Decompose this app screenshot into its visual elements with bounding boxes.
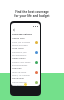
staticText: Travel plan xyxy=(12,77,24,80)
staticText: Life plan xyxy=(12,67,22,70)
button[interactable]: Health plan xyxy=(12,37,38,47)
button[interactable]: Home policy xyxy=(12,57,38,67)
button[interactable]: Back xyxy=(12,28,15,31)
staticText: Find the best coverage for your life and… xyxy=(0,10,64,18)
staticText: From $42 a month Dental included xyxy=(12,41,31,47)
staticText: Auto cover xyxy=(12,47,24,50)
staticText: Coverage options xyxy=(12,33,32,36)
staticText: Trip protection and medical xyxy=(12,81,27,86)
button[interactable]: Chat xyxy=(24,83,27,86)
staticText: Term life cover from $15 a month xyxy=(12,71,30,77)
button[interactable]: Travel plan xyxy=(12,77,38,86)
button[interactable]: Auto cover xyxy=(12,47,38,57)
button[interactable]: Life plan xyxy=(12,67,38,77)
staticText: Home policy xyxy=(12,57,26,60)
staticText: Starting at $28 Full protection xyxy=(12,51,27,57)
staticText: Health plan xyxy=(12,37,25,40)
staticText: Protect your home and belongings xyxy=(12,61,31,67)
